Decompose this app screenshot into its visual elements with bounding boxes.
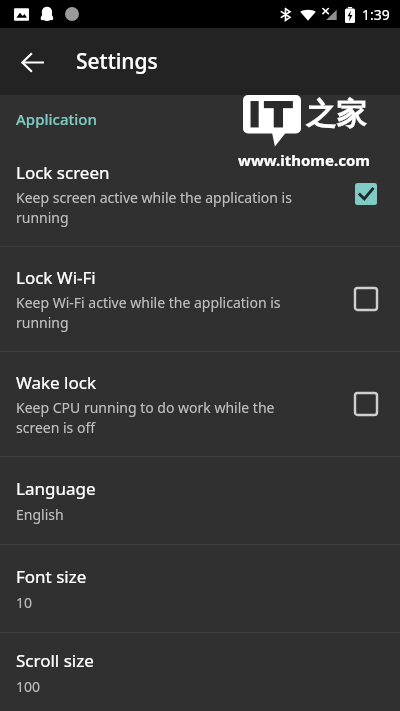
button[interactable]: Lock screen xyxy=(0,142,400,246)
staticText: www.ithome.com xyxy=(238,150,370,170)
staticText: Keep screen active while the application… xyxy=(16,188,292,228)
staticText: Lock screen xyxy=(16,161,110,184)
staticText: 100 xyxy=(16,677,41,696)
button[interactable]: Language xyxy=(0,457,400,544)
staticText: Language xyxy=(16,477,96,500)
staticText: 10 xyxy=(16,593,33,612)
staticText: Application xyxy=(16,109,97,129)
staticText: Lock Wi-Fi xyxy=(16,266,96,289)
staticText: Settings xyxy=(76,47,158,76)
staticText: Keep Wi-Fi active while the application … xyxy=(16,293,281,333)
button[interactable]: Scroll size xyxy=(0,633,400,711)
button[interactable]: Unchecked xyxy=(346,384,386,424)
button[interactable]: Font size xyxy=(0,545,400,632)
button[interactable]: Unchecked xyxy=(346,279,386,319)
button[interactable]: Checked xyxy=(346,174,386,214)
staticText: 1:39 xyxy=(362,5,390,24)
button[interactable]: Back xyxy=(10,40,54,84)
button[interactable]: Lock Wi-Fi xyxy=(0,247,400,351)
staticText: Scroll size xyxy=(16,649,94,672)
staticText: Keep CPU running to do work while the sc… xyxy=(16,398,275,438)
staticText: 之家 xyxy=(306,95,366,133)
staticText: English xyxy=(16,505,64,524)
staticText: Wake lock xyxy=(16,371,97,394)
staticText: Font size xyxy=(16,565,87,588)
button[interactable]: Wake lock xyxy=(0,352,400,456)
